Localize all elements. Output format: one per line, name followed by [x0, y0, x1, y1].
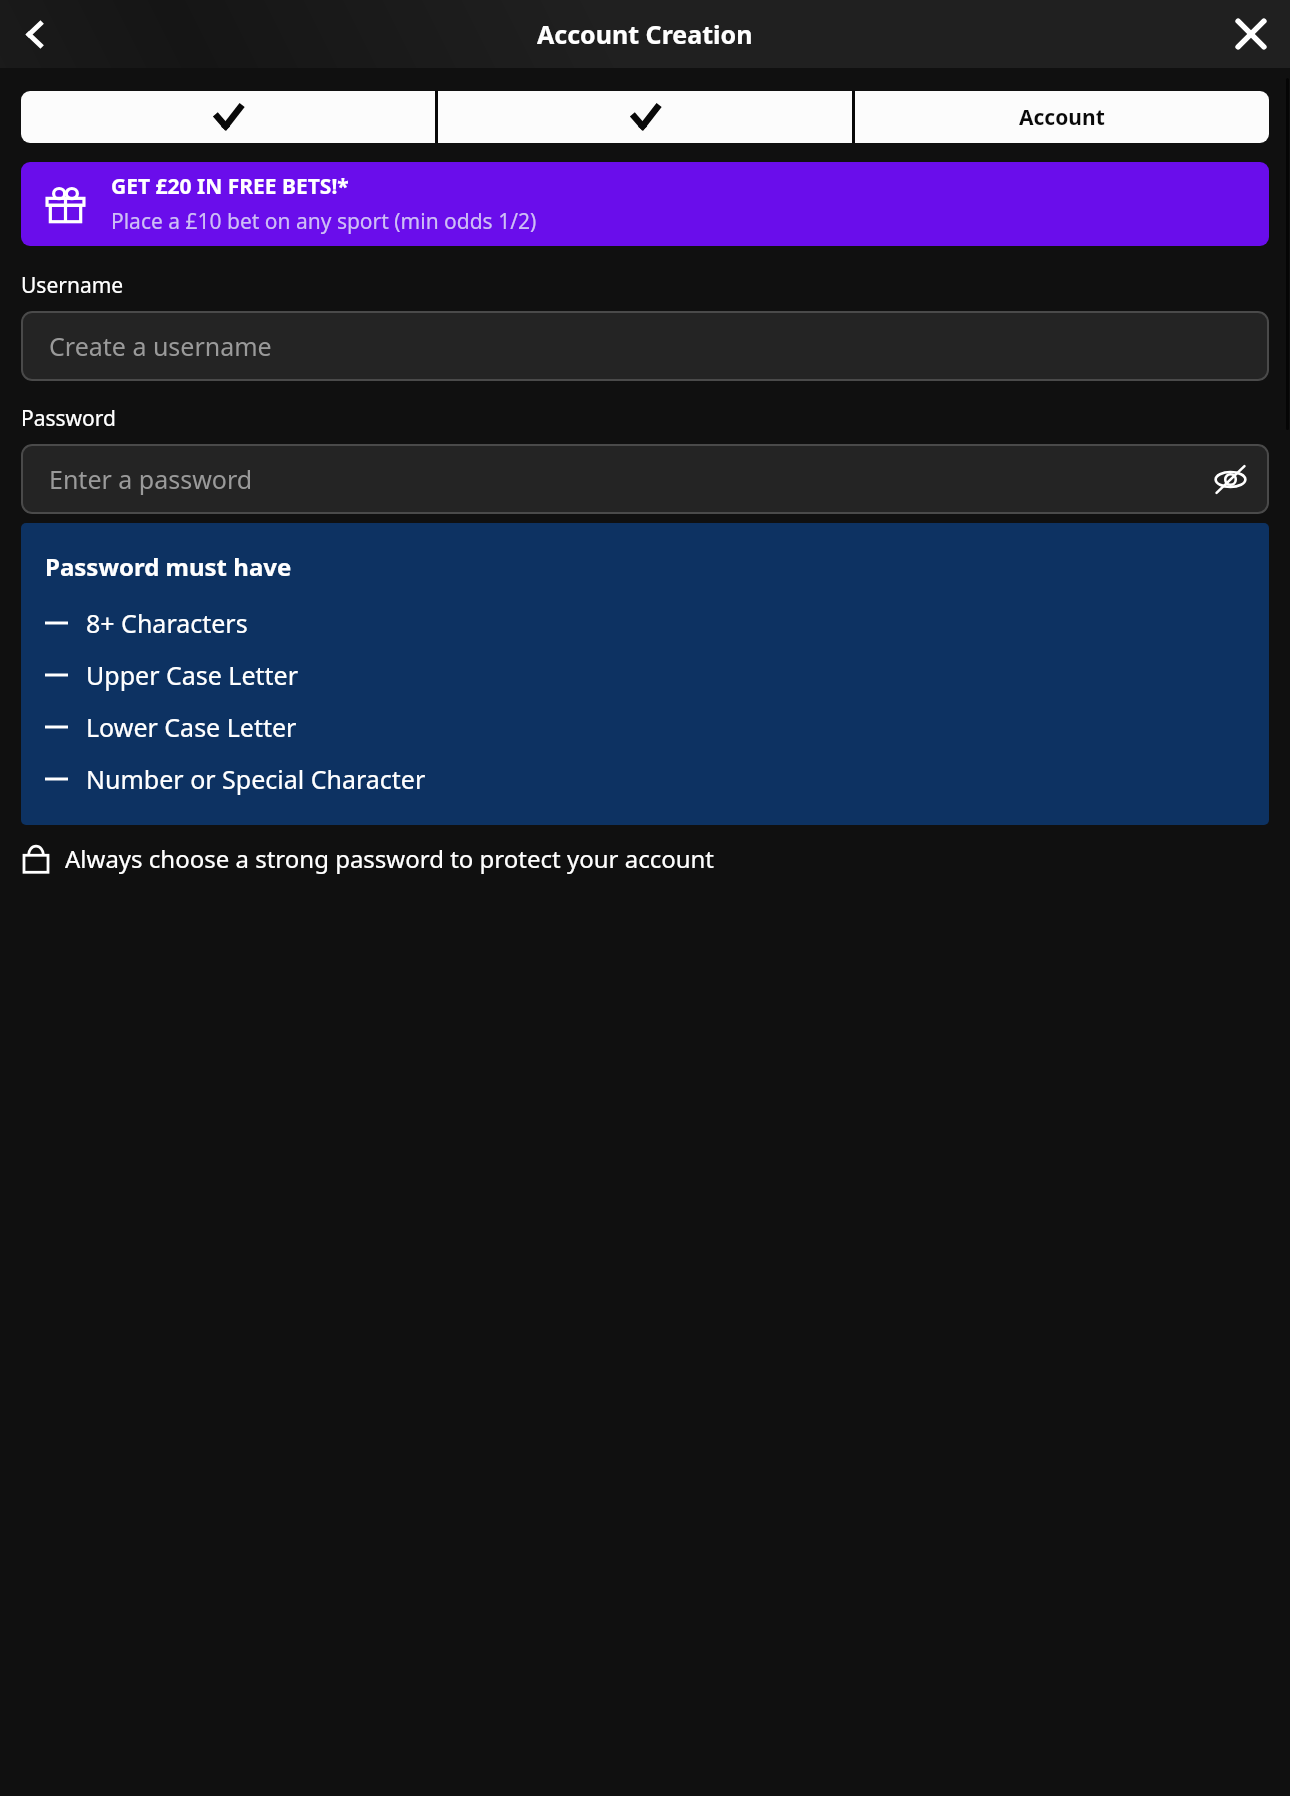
staticText: Place a £10 bet on any sport (min odds 1… — [111, 207, 537, 236]
button[interactable]: Enter a password — [21, 444, 1269, 514]
button[interactable]: Create a username — [21, 311, 1269, 381]
button[interactable]: Close — [1223, 6, 1279, 62]
staticText: Username — [21, 271, 124, 300]
staticText: Upper Case Letter — [86, 658, 299, 692]
staticText: Password — [21, 404, 116, 433]
staticText: Create a username — [49, 329, 272, 363]
staticText: Always choose a strong password to prote… — [65, 842, 715, 875]
button[interactable]: Account — [855, 91, 1269, 143]
staticText: Number or Special Character — [86, 762, 426, 796]
staticText: GET £20 IN FREE BETS!* — [111, 172, 349, 201]
staticText: Enter a password — [49, 462, 253, 496]
staticText: Account — [1019, 103, 1105, 132]
button[interactable]: Show password — [1203, 452, 1257, 506]
staticText: Password must have — [45, 550, 292, 583]
button[interactable]: GET £20 IN FREE BETS!* — [21, 162, 1269, 246]
other: Completed step — [214, 103, 243, 132]
button[interactable]: Back — [9, 8, 61, 60]
button[interactable]: Completed step — [21, 91, 435, 143]
staticText: Lower Case Letter — [86, 710, 297, 744]
other: Completed step — [631, 103, 660, 132]
button[interactable]: Completed step — [438, 91, 852, 143]
staticText: 8+ Characters — [86, 606, 248, 640]
staticText: Account Creation — [537, 17, 753, 51]
